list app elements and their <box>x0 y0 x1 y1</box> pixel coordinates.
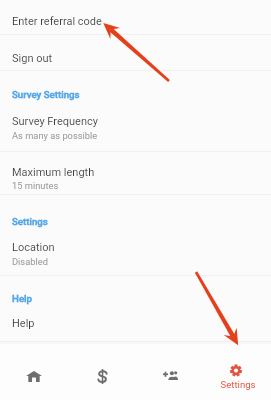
staticText: Enter referral code <box>12 15 102 28</box>
button[interactable]: Enter referral code <box>0 0 271 35</box>
staticText: Sign out <box>12 52 53 65</box>
button[interactable]: Help <box>0 310 271 340</box>
staticText: Settings <box>12 216 48 227</box>
button[interactable]: Maximum length <box>0 152 271 194</box>
button[interactable]: Invite friends <box>136 341 204 400</box>
staticText: Location <box>12 241 55 254</box>
staticText: Survey Frequency <box>12 115 98 128</box>
staticText: Survey Settings <box>12 89 80 100</box>
staticText: Disabled <box>12 256 48 267</box>
staticText: Maximum length <box>12 166 95 179</box>
staticText: Help <box>12 317 35 330</box>
staticText: 15 minutes <box>12 180 59 191</box>
staticText: As many as possible <box>12 130 98 141</box>
button[interactable]: Settings <box>204 341 271 400</box>
button[interactable]: Survey Frequency <box>0 106 271 151</box>
staticText: Settings <box>220 379 256 390</box>
staticText: Help <box>12 293 33 304</box>
button[interactable]: Sign out <box>0 35 271 70</box>
button[interactable]: Home <box>0 341 68 400</box>
button[interactable]: Earnings <box>68 341 136 400</box>
button[interactable]: Location <box>0 234 271 275</box>
